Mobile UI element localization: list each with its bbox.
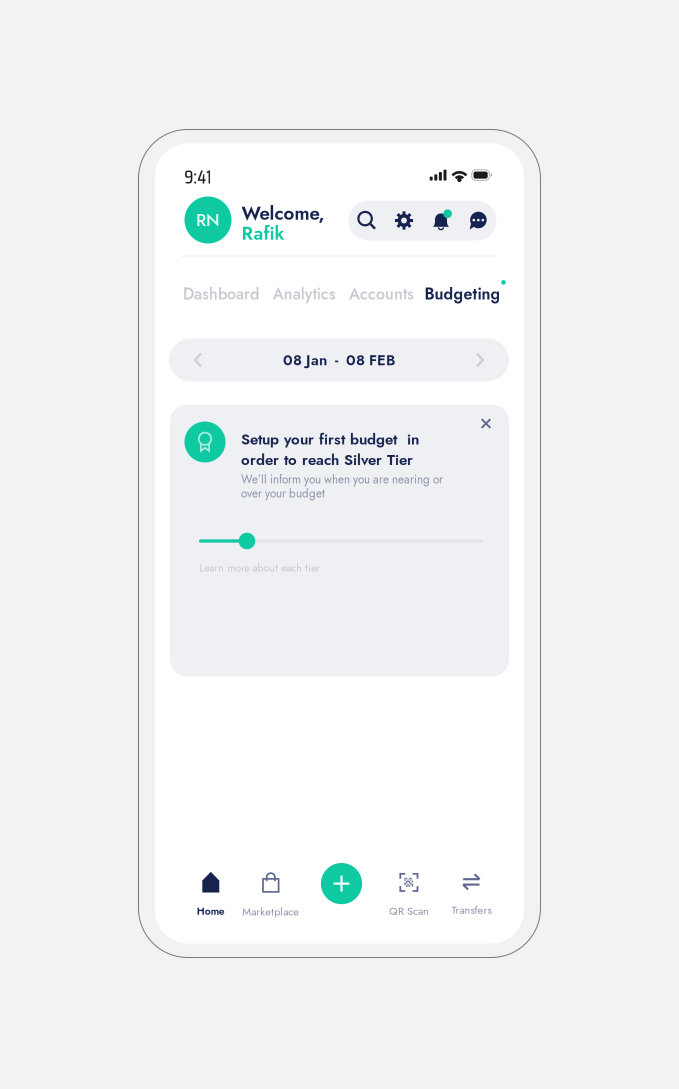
button[interactable]: Analytics (273, 282, 336, 306)
button[interactable]: Dashboard (183, 282, 259, 306)
button[interactable]: Notifications (422, 200, 459, 240)
button[interactable]: Next period (451, 338, 509, 381)
staticText: QR Scan (389, 903, 429, 919)
staticText: Budgeting (424, 282, 500, 306)
button[interactable]: Home (176, 871, 246, 919)
button[interactable]: Budgeting (424, 282, 500, 306)
button[interactable]: Messages (459, 200, 496, 240)
button[interactable]: Transfers (436, 871, 506, 918)
staticText: Setup your first budget in (241, 428, 419, 450)
button[interactable]: Settings (385, 200, 422, 240)
button[interactable]: Previous period (169, 338, 227, 381)
button[interactable]: Add (321, 863, 362, 904)
button[interactable]: Accounts (349, 282, 414, 306)
staticText: We’ll inform you when you are nearing or (241, 471, 443, 488)
staticText: 08 Jan - 08 FEB (283, 349, 395, 371)
staticText: over your budget (241, 485, 325, 502)
staticText: Rafik (241, 220, 284, 247)
staticText: Welcome, (241, 200, 324, 227)
staticText: RN (196, 207, 220, 232)
button[interactable]: Marketplace (231, 871, 311, 919)
staticText: Analytics (273, 282, 336, 306)
staticText: Marketplace (242, 904, 299, 919)
staticText: Home (197, 904, 225, 919)
button[interactable]: Search (348, 200, 385, 240)
staticText: Dashboard (183, 282, 259, 306)
staticText: Learn more about each tier (199, 560, 320, 575)
button[interactable]: Profile (184, 196, 231, 243)
button[interactable]: QR Scan (374, 871, 444, 919)
staticText: order to reach Silver Tier (241, 449, 413, 471)
staticText: 9:41 (184, 162, 211, 192)
staticText: Accounts (349, 282, 414, 306)
button[interactable]: Dismiss (472, 409, 500, 437)
staticText: Transfers (451, 902, 491, 918)
